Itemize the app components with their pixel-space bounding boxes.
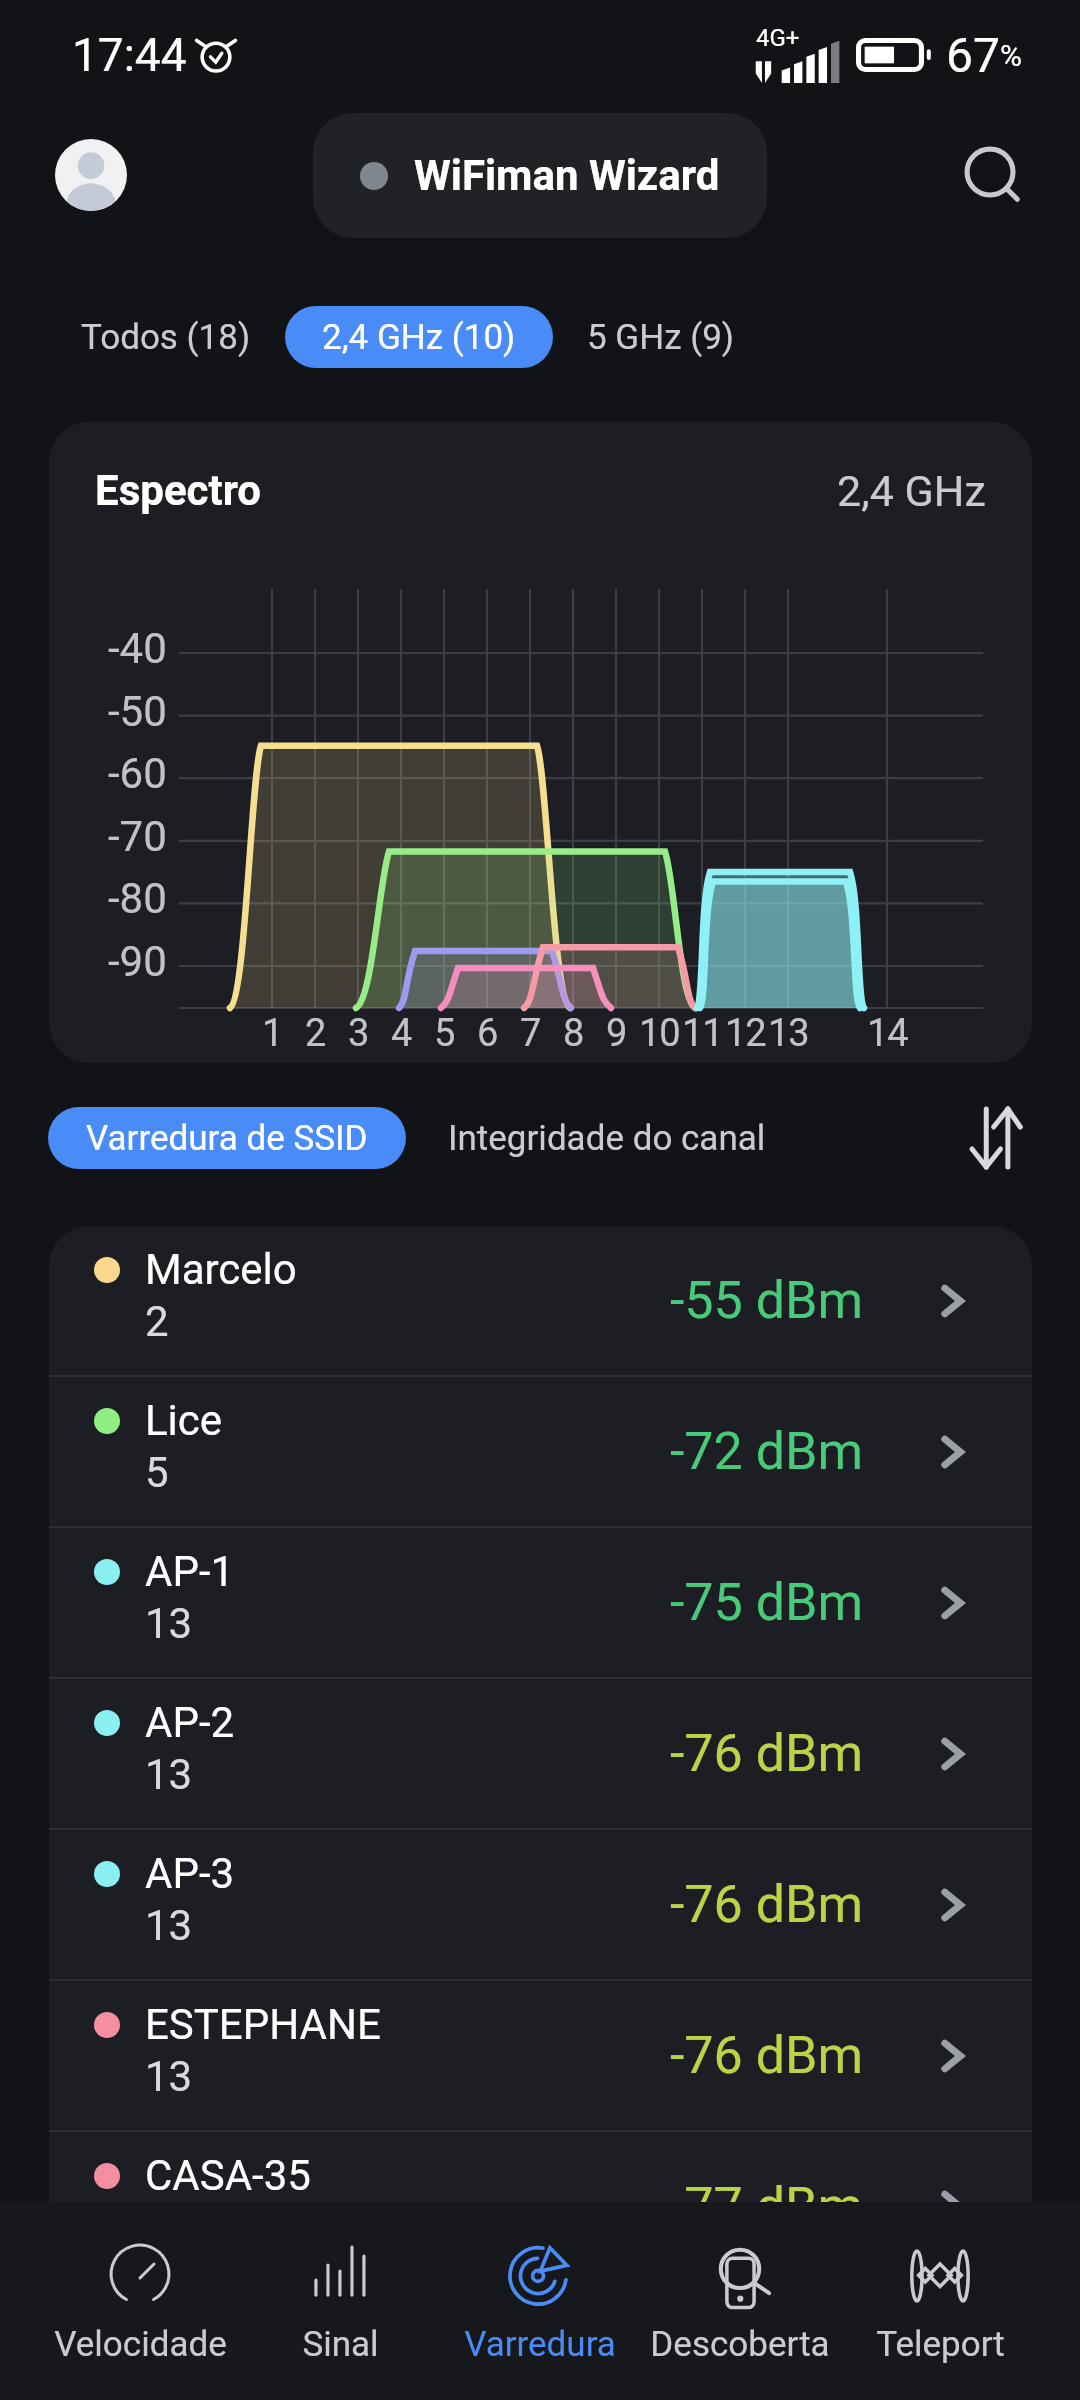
staticText: 2 — [145, 2203, 169, 2252]
staticText: ESTEPHANE — [145, 2000, 381, 2049]
staticText: 10 — [639, 1011, 680, 1056]
staticText: Lice — [145, 1396, 223, 1445]
staticText: -40 — [108, 624, 167, 673]
staticText: 17:44 — [72, 28, 187, 82]
button[interactable]: Search — [953, 135, 1033, 215]
button[interactable]: AP-3 — [49, 1830, 1032, 1979]
staticText: Marcelo — [145, 1245, 297, 1294]
staticText: 13 — [145, 1750, 193, 1799]
staticText: -90 — [108, 937, 167, 986]
staticText: -55 dBm — [670, 1270, 864, 1331]
staticText: Sinal — [302, 2324, 379, 2365]
staticText: 7 — [520, 1011, 541, 1056]
staticText: Descoberta — [650, 2324, 830, 2365]
button[interactable]: Teleport — [840, 2202, 1040, 2400]
staticText: -76 dBm — [670, 2025, 864, 2086]
staticText: CASA-35 — [145, 2151, 311, 2200]
button[interactable]: Varredura — [440, 2202, 640, 2400]
button[interactable]: CASA-35 — [49, 2132, 1032, 2281]
staticText: 13 — [145, 1901, 193, 1950]
button[interactable]: Marcelo — [49, 1226, 1032, 1375]
staticText: 5 GHz (9) — [587, 317, 735, 358]
staticText: 2,4 GHz — [837, 466, 986, 516]
button[interactable]: 5 GHz (9) — [553, 306, 769, 368]
staticText: 13 — [145, 1599, 193, 1648]
staticText: Varredura — [464, 2324, 616, 2365]
button[interactable]: Sort — [952, 1095, 1038, 1181]
staticText: -70 — [108, 812, 167, 861]
button[interactable]: Varredura de SSID — [48, 1107, 406, 1169]
staticText: -76 dBm — [670, 1874, 864, 1935]
staticText: AP-1 — [145, 1547, 235, 1596]
button[interactable]: AP-2 — [49, 1679, 1032, 1828]
staticText: 2 — [145, 1297, 169, 1346]
button[interactable]: Lice — [49, 1377, 1032, 1526]
staticText: 67 — [946, 27, 1000, 83]
staticText: WiFiman Wizard — [414, 151, 720, 200]
button[interactable]: Integridade do canal — [406, 1107, 808, 1169]
staticText: 13 — [145, 2052, 193, 2101]
staticText: -75 dBm — [670, 1572, 864, 1633]
staticText: AP-3 — [145, 1849, 235, 1898]
button[interactable]: Sinal — [240, 2202, 440, 2400]
staticText: Espectro — [95, 466, 262, 515]
staticText: 11 — [682, 1011, 723, 1056]
staticText: -80 — [108, 874, 167, 923]
staticText: -72 dBm — [670, 1421, 864, 1482]
staticText: -77 dBm — [670, 2176, 864, 2237]
staticText: 4G+ — [756, 24, 800, 52]
staticText: -76 dBm — [670, 1723, 864, 1784]
staticText: 13 — [768, 1011, 809, 1056]
staticText: 2 — [305, 1011, 326, 1056]
staticText: 5 — [145, 1448, 169, 1497]
staticText: 4 — [391, 1011, 412, 1056]
staticText: Todos (18) — [81, 317, 251, 358]
staticText: 9 — [606, 1011, 627, 1056]
staticText: 1 — [262, 1011, 283, 1056]
button[interactable]: ESTEPHANE — [49, 1981, 1032, 2130]
staticText: AP-2 — [145, 1698, 235, 1747]
staticText: -60 — [108, 749, 167, 798]
staticText: 8 — [563, 1011, 584, 1056]
button[interactable]: Todos (18) — [47, 306, 285, 368]
staticText: Velocidade — [54, 2324, 227, 2365]
staticText: Varredura de SSID — [86, 1118, 368, 1159]
staticText: 6 — [477, 1011, 498, 1056]
staticText: % — [1000, 38, 1022, 73]
staticText: 12 — [725, 1011, 766, 1056]
staticText: 2,4 GHz (10) — [322, 317, 516, 358]
button[interactable]: Velocidade — [40, 2202, 240, 2400]
staticText: -50 — [108, 687, 167, 736]
button[interactable]: Descoberta — [640, 2202, 840, 2400]
staticText: Integridade do canal — [448, 1118, 766, 1159]
staticText: Teleport — [876, 2324, 1005, 2365]
button[interactable]: 2,4 GHz (10) — [285, 306, 553, 368]
button[interactable]: WiFiman Wizard — [313, 113, 767, 238]
staticText: 3 — [348, 1011, 369, 1056]
staticText: 5 — [434, 1011, 455, 1056]
staticText: 14 — [867, 1011, 908, 1056]
button[interactable]: Profile — [55, 139, 127, 211]
button[interactable]: AP-1 — [49, 1528, 1032, 1677]
